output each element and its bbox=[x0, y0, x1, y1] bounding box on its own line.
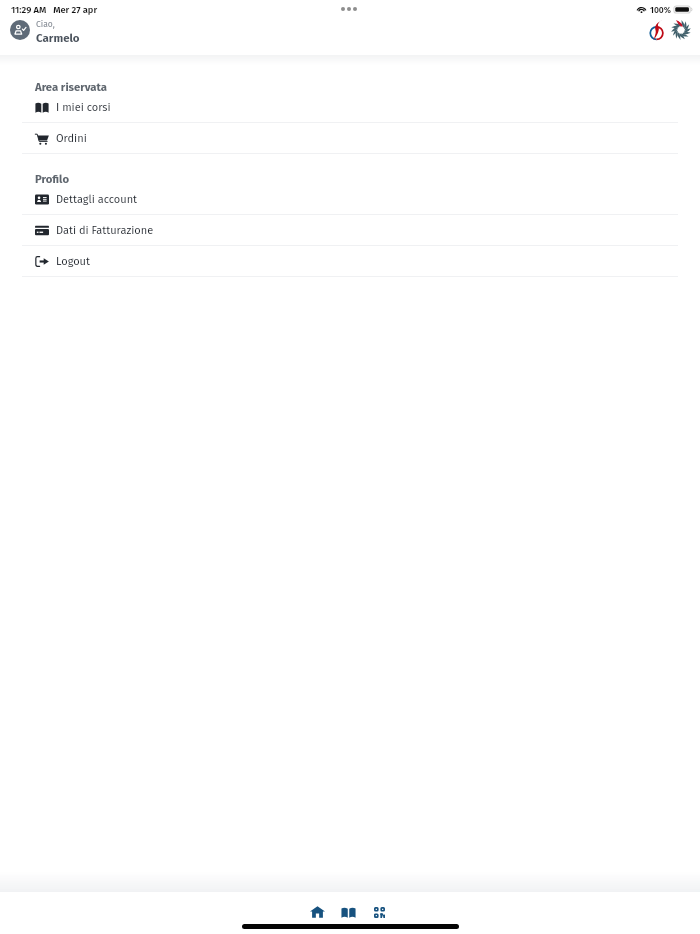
staticText: Carmelo bbox=[36, 31, 80, 43]
staticText: Area riservata bbox=[35, 80, 107, 94]
staticText: Ciao, bbox=[36, 19, 55, 29]
staticText: Dettagli account bbox=[56, 193, 138, 206]
button[interactable]: Logo bbox=[650, 20, 664, 40]
staticText: Logout bbox=[56, 255, 90, 268]
button[interactable]: Courses bbox=[337, 904, 359, 920]
button[interactable]: Academy logo bbox=[671, 20, 691, 40]
button[interactable]: Scan QR code bbox=[368, 904, 390, 920]
button[interactable]: Dati di Fatturazione bbox=[0, 215, 700, 245]
button[interactable]: Home bbox=[306, 904, 328, 920]
button[interactable]: Dettagli account bbox=[0, 184, 700, 214]
button[interactable]: Ordini bbox=[0, 123, 700, 153]
staticText: Dati di Fatturazione bbox=[56, 224, 154, 237]
button[interactable]: Logout bbox=[0, 246, 700, 276]
button[interactable]: I miei corsi bbox=[0, 92, 700, 122]
button[interactable]: Ciao, bbox=[10, 18, 80, 42]
staticText: Ordini bbox=[56, 132, 87, 145]
staticText: Profilo bbox=[35, 172, 70, 186]
staticText: 11:29 AM Mer 27 apr bbox=[11, 4, 98, 15]
staticText: I miei corsi bbox=[56, 101, 111, 114]
staticText: 100% bbox=[650, 5, 671, 15]
